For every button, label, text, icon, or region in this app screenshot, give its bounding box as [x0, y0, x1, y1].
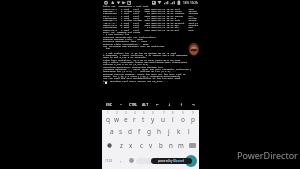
staticText: lrwxrwxrwx 1 root root 11 2023-01-12 10:… — [103, 26, 193, 29]
staticText: a — [110, 127, 114, 136]
staticText: c — [140, 141, 143, 149]
button[interactable]: 9 — [178, 110, 188, 124]
staticText: CTRL — [129, 102, 138, 107]
button[interactable]: 6 — [148, 110, 158, 124]
staticText: 4 — [134, 111, 136, 115]
staticText: lrwxrwxrwx 1 root root 17 2023-01-12 10:… — [103, 17, 197, 20]
button[interactable]: a — [107, 124, 116, 138]
staticText: -rw-r--r-- 1 root root 704 2023-01-12 10… — [103, 22, 199, 25]
button[interactable]: 4 — [130, 110, 139, 124]
button[interactable]: 5 — [139, 110, 148, 124]
staticText: Reading package lists... Done — [103, 38, 143, 41]
button[interactable]: ← — [151, 99, 163, 110]
staticText: r — [133, 115, 136, 124]
staticText: g — [147, 127, 151, 136]
staticText: ↑ — [180, 103, 183, 107]
staticText: ~ — [120, 102, 122, 107]
staticText: 5 — [143, 111, 145, 115]
button[interactable]: k — [174, 124, 184, 138]
staticText: t — [142, 115, 145, 124]
staticText: x — [129, 141, 133, 149]
staticText: q — [106, 115, 110, 124]
button[interactable]: v — [146, 138, 156, 152]
button[interactable]: h — [154, 124, 164, 138]
staticText: 14% 10:2b — [183, 1, 198, 5]
staticText: u — [161, 115, 166, 124]
button[interactable]: ↑ — [175, 99, 187, 110]
staticText: , — [120, 157, 122, 164]
staticText: Building dependency tree... Done — [103, 40, 148, 43]
button[interactable]: b — [156, 138, 166, 152]
button[interactable]: ?123 — [102, 152, 116, 169]
staticText: h — [157, 127, 162, 136]
button[interactable]: Shift — [102, 138, 116, 152]
button[interactable]: f — [134, 124, 144, 138]
button[interactable]: Voice input — [185, 155, 197, 167]
staticText: Gboard — [173, 159, 185, 163]
staticText: l — [188, 127, 190, 136]
staticText: Checking availability for installation — [103, 36, 156, 39]
staticText: The following NEW packages will be insta… — [103, 45, 166, 48]
staticText: ?123 — [105, 158, 113, 163]
staticText: → — [192, 103, 195, 107]
button[interactable]: Backspace — [186, 138, 199, 152]
staticText: ~ $ apt install tsu -y && tsu && whoami … — [103, 52, 177, 55]
staticText: ↓ — [168, 103, 171, 107]
button[interactable]: ↓ — [163, 99, 175, 110]
button[interactable]: ~ — [115, 99, 127, 110]
staticText: 2 — [116, 111, 118, 115]
button[interactable]: c — [136, 138, 146, 152]
staticText: 0 upgraded, 1 newly installed, 0 to remo… — [103, 54, 189, 57]
button[interactable]: 7 — [158, 110, 168, 124]
button[interactable]: m — [176, 138, 186, 152]
staticText: v — [149, 141, 153, 149]
button[interactable]: j — [164, 124, 174, 138]
staticText: k — [177, 127, 181, 136]
staticText: 8 — [172, 111, 174, 115]
staticText: drwxrwx--- 6 system cache 4096 2023-01-1… — [103, 10, 197, 13]
button[interactable]: Space — [136, 152, 199, 169]
staticText: powered by — [158, 159, 173, 163]
button[interactable]: 3 — [121, 110, 130, 124]
staticText: ESC — [106, 102, 112, 107]
staticText: j — [168, 127, 170, 136]
button[interactable]: s — [116, 124, 125, 138]
button[interactable]: , — [116, 152, 126, 169]
staticText: 3 — [125, 111, 127, 115]
button[interactable]: ALT — [139, 99, 151, 110]
button[interactable]: g — [144, 124, 154, 138]
staticText: drwxr-xr-x 16 root root 3840 2023-01-12 … — [103, 24, 199, 27]
button[interactable]: 8 — [168, 110, 178, 124]
staticText: i — [172, 115, 174, 124]
staticText: drwxr-xr-x 2 root root 4096 2023-01-12 1… — [103, 8, 194, 11]
staticText: drwxrwx--x 1 system system 4096 2023-01-… — [103, 19, 197, 22]
staticText: y — [151, 115, 155, 124]
button[interactable]: n — [166, 138, 176, 152]
staticText: ~ $ pkg install tsu — [103, 33, 130, 36]
button[interactable]: l — [184, 124, 194, 138]
button[interactable]: Emoji — [126, 152, 136, 169]
button[interactable]: z — [116, 138, 126, 152]
staticText: Fetched 9,516 B in 1s (9,519 B/s) — [103, 63, 149, 66]
button[interactable]: CTRL — [127, 99, 139, 110]
staticText: p — [191, 115, 195, 124]
button[interactable]: d — [125, 124, 134, 138]
button[interactable]: x — [126, 138, 136, 152]
button[interactable]: ESC — [102, 99, 115, 110]
staticText: b — [159, 141, 163, 149]
button[interactable]: 2 — [112, 110, 121, 124]
staticText: Need to get 9,516 B of archives. — [103, 56, 148, 59]
staticText: PowerDirector — [237, 149, 298, 161]
staticText: lrwxrwxrwx 1 root root 13 2023-01-12 10:… — [103, 12, 199, 15]
staticText: usage: tsu [-h] [-s SHELL] [-p] [--prese… — [103, 75, 181, 78]
button[interactable]: → — [187, 99, 199, 110]
staticText: After this operation, 37.9 kB of disk sp… — [103, 59, 182, 62]
staticText: w — [114, 115, 120, 124]
button[interactable]: 0 — [188, 110, 198, 124]
staticText: s — [119, 127, 123, 136]
staticText: Reading state information... Done — [103, 43, 149, 46]
staticText: o — [181, 115, 185, 124]
staticText: (Reading database ... 26195 files and di… — [103, 68, 192, 71]
staticText: m — [178, 141, 184, 149]
button[interactable]: 1 — [103, 110, 112, 124]
